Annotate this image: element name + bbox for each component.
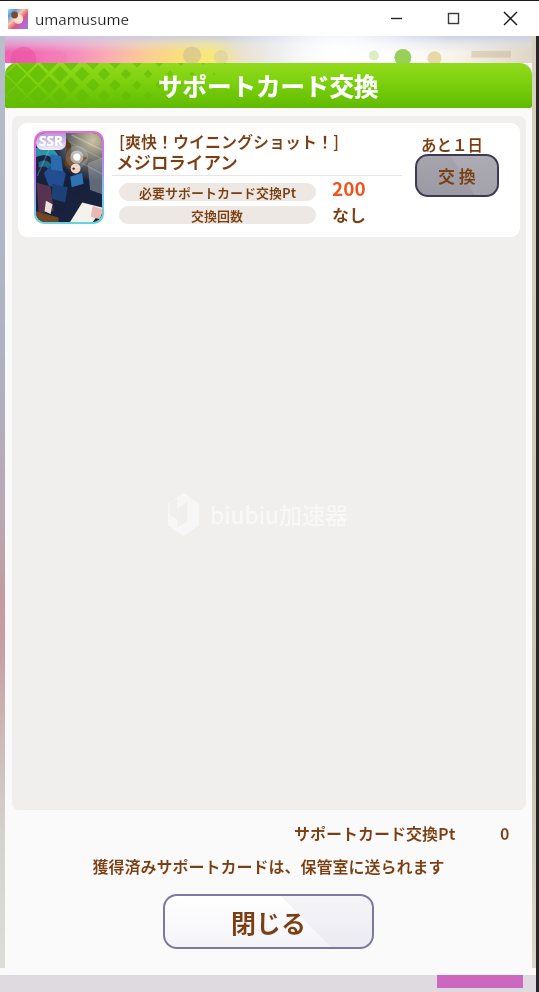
staticText: 0 bbox=[500, 821, 510, 844]
staticText: 獲得済みサポートカードは、保管室に送られます bbox=[92, 854, 445, 877]
staticText: [爽快！ウイニングショット！] bbox=[119, 129, 340, 152]
button[interactable]: Maximize bbox=[425, 1, 482, 36]
staticText: 200 bbox=[332, 174, 366, 202]
staticText: biubiu加速器 bbox=[210, 497, 348, 530]
button[interactable]: Minimize bbox=[368, 1, 425, 36]
staticText: サポートカード交換Pt bbox=[294, 821, 456, 844]
button[interactable]: SSR bbox=[18, 123, 520, 237]
button[interactable]: 交 換 bbox=[417, 156, 497, 195]
staticText: なし bbox=[332, 202, 366, 227]
staticText: 交 換 bbox=[438, 163, 476, 188]
staticText: 交換回数 bbox=[191, 206, 244, 224]
staticText: あと１日 bbox=[421, 133, 484, 155]
staticText: umamusume bbox=[35, 9, 129, 29]
button[interactable]: 閉じる bbox=[165, 896, 372, 947]
staticText: 必要サポートカード交換Pt bbox=[139, 183, 297, 201]
button[interactable]: Close window bbox=[482, 1, 539, 36]
staticText: サポートカード交換 bbox=[158, 68, 379, 103]
staticText: SSR bbox=[39, 133, 63, 149]
staticText: 閉じる bbox=[231, 904, 307, 940]
staticText: メジロライアン bbox=[116, 149, 238, 174]
